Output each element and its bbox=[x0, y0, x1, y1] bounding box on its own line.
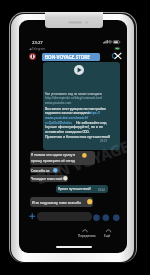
staticText: BON·VOYAGE.STORE bbox=[45, 54, 90, 60]
button[interactable]: BON·VOYAGE.STORE bbox=[42, 53, 100, 61]
button[interactable]: Chat avatar bbox=[29, 53, 36, 60]
staticText: Не забывайте код bbox=[76, 120, 107, 125]
staticText: кодового замка чемодана: bbox=[45, 110, 92, 115]
staticText: v=QaDv0Dvhdss bbox=[45, 120, 72, 125]
staticText: ◀ Telegram bbox=[29, 47, 46, 51]
staticText: Ярких путешествий! bbox=[58, 186, 92, 191]
staticText: оставляйте заведомо 000. bbox=[45, 129, 90, 134]
button[interactable]: Close bbox=[111, 50, 123, 62]
staticText: http://shempinski.ru/blog/ustanovit-kod bbox=[45, 96, 102, 100]
staticText: Переделать bbox=[78, 234, 96, 238]
staticText: BON VOYAGE bbox=[33, 136, 127, 188]
button[interactable]: Attach bbox=[29, 213, 35, 219]
staticText: Чемодан классный bbox=[31, 176, 63, 181]
staticText: 23:24 bbox=[98, 188, 105, 192]
staticText: https:// bbox=[88, 110, 101, 115]
button[interactable] bbox=[37, 212, 92, 221]
staticText: 23:21 bbox=[100, 139, 108, 143]
button[interactable] bbox=[43, 62, 120, 150]
staticText: (лучше сфотографируйте), но и не bbox=[45, 124, 103, 129]
staticText: 23:27 bbox=[32, 40, 43, 46]
staticText: Высылаю инструкцию по настройке bbox=[45, 106, 107, 111]
staticText: Я только что сдала сумку в bbox=[31, 152, 76, 157]
button[interactable] bbox=[56, 185, 108, 193]
button[interactable] bbox=[30, 151, 95, 165]
staticText: Приятных и безопасных путешествий! bbox=[45, 134, 111, 139]
staticText: www.youtube.com bbox=[45, 101, 72, 105]
staticText: Спасибо за bbox=[31, 168, 50, 173]
staticText: прошу проверить её сегод bbox=[31, 158, 75, 163]
staticText: www.youtube.com/watch? bbox=[45, 115, 89, 120]
button[interactable] bbox=[30, 167, 60, 173]
staticText: Как установить код на замке чемодана bbox=[45, 92, 102, 96]
button[interactable] bbox=[30, 197, 93, 207]
button[interactable] bbox=[30, 175, 68, 182]
staticText: Ещё bbox=[104, 234, 111, 238]
staticText: И за подушечку тоже спасибо bbox=[32, 200, 82, 205]
